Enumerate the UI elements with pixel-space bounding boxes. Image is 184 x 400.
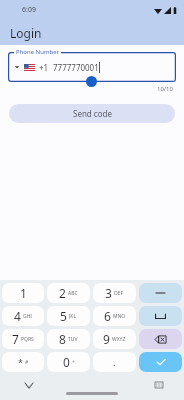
staticText: DEF [114, 290, 124, 297]
staticText: PQRS [21, 336, 34, 343]
button[interactable]: . [93, 352, 136, 372]
staticText: 9 [103, 331, 110, 347]
button[interactable]: 3 [93, 283, 136, 303]
staticText: MNO [113, 313, 126, 320]
staticText: ABC [68, 290, 78, 297]
staticText: + [72, 359, 75, 366]
staticText: Login [10, 25, 42, 41]
button[interactable]: Hide keyboard [22, 378, 36, 392]
staticText: 0 [63, 354, 70, 370]
staticText: 7 [12, 331, 19, 347]
button[interactable]: Send code [9, 104, 175, 123]
staticText: 7777770001 [53, 62, 99, 73]
other: Select country code [14, 64, 20, 70]
button[interactable]: 8 [47, 329, 90, 349]
staticText: 3 [105, 285, 112, 301]
staticText: Send code [73, 108, 112, 119]
button[interactable]: 2 [47, 283, 90, 303]
staticText: 2 [59, 285, 66, 301]
staticText: Phone Number [16, 48, 60, 56]
staticText: 6 [104, 308, 111, 324]
staticText: +1 [39, 62, 49, 73]
staticText: JKL [69, 313, 77, 320]
button[interactable]: 4 [2, 306, 44, 326]
staticText: * [18, 356, 23, 368]
button[interactable]: 0 [47, 352, 90, 372]
staticText: # [25, 359, 29, 366]
staticText: 8 [59, 331, 66, 347]
staticText: 6:09 [22, 5, 36, 15]
button[interactable]: 1 [2, 283, 44, 303]
button[interactable]: Space [139, 306, 182, 326]
button[interactable]: 9 [93, 329, 136, 349]
button[interactable]: Dash [139, 283, 182, 303]
button[interactable]: 5 [47, 306, 90, 326]
button[interactable]: Change keyboard [152, 378, 166, 392]
button[interactable]: 6 [93, 306, 136, 326]
staticText: WXYZ [112, 336, 126, 343]
staticText: 10/10 [157, 85, 173, 93]
staticText: 1 [20, 285, 27, 301]
staticText: GHI [23, 313, 33, 320]
button[interactable]: * [2, 352, 44, 372]
button[interactable]: Backspace [139, 329, 182, 349]
staticText: 5 [60, 308, 67, 324]
staticText: TUV [68, 336, 78, 343]
button[interactable]: 7 [2, 329, 44, 349]
staticText: . [113, 356, 116, 368]
staticText: 4 [14, 308, 21, 324]
button[interactable]: Enter [139, 352, 182, 372]
